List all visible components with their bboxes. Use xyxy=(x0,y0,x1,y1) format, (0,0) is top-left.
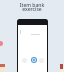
button[interactable]: Selected option xyxy=(31,57,37,63)
button[interactable]: Option three xyxy=(39,58,44,63)
staticText: Item bank exercise xyxy=(0,2,64,12)
button[interactable]: Option one xyxy=(22,58,27,63)
